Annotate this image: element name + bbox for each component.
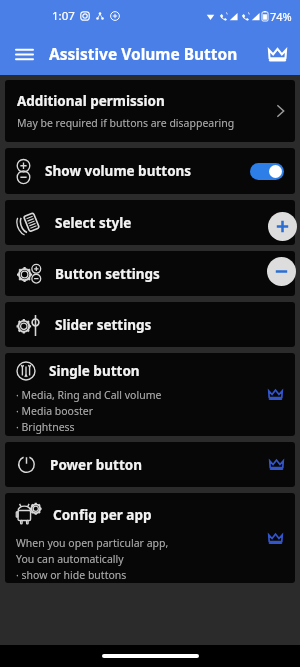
button[interactable]: Slider settings xyxy=(5,302,295,347)
staticText: Select style xyxy=(55,214,132,232)
staticText: Single button xyxy=(49,362,140,380)
button[interactable]: Single button xyxy=(5,353,295,436)
staticText: Slider settings xyxy=(55,316,152,334)
staticText: May be required if buttons are disappear… xyxy=(17,116,235,130)
staticText: · show or hide buttons xyxy=(16,568,127,582)
staticText: When you open particular app, xyxy=(16,536,169,550)
button[interactable]: Decrease xyxy=(267,257,296,286)
button[interactable]: Power button xyxy=(5,442,295,487)
staticText: Button settings xyxy=(55,265,160,283)
staticText: You can automatically xyxy=(16,552,124,566)
button[interactable]: Show volume buttons toggle xyxy=(250,163,284,180)
button[interactable]: Select style xyxy=(5,200,295,245)
staticText: · Brightness xyxy=(16,420,75,434)
button[interactable]: Premium xyxy=(262,39,292,69)
button[interactable]: Show volume buttons xyxy=(5,148,295,194)
staticText: Additional permission xyxy=(17,92,165,110)
staticText: Power button xyxy=(50,456,142,474)
staticText: 1:07 xyxy=(52,8,75,24)
staticText: Show volume buttons xyxy=(45,162,192,180)
button[interactable]: Additional permission xyxy=(5,80,295,142)
button[interactable]: Button settings xyxy=(5,251,295,296)
button[interactable]: Config per app xyxy=(5,493,295,583)
staticText: · Media, Ring and Call volume xyxy=(16,388,162,402)
staticText: · Media booster xyxy=(16,404,94,418)
button[interactable]: Increase xyxy=(268,212,297,241)
staticText: 74% xyxy=(270,9,292,24)
staticText: Assistive Volume Button xyxy=(49,43,238,64)
button[interactable]: Menu xyxy=(8,38,40,70)
staticText: Config per app xyxy=(53,506,152,524)
